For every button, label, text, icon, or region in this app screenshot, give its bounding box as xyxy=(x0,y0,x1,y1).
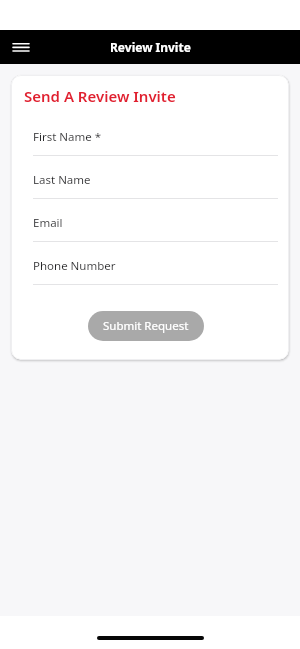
staticText: Email xyxy=(33,215,63,231)
button[interactable]: First Name * xyxy=(33,129,278,156)
staticText: Phone Number xyxy=(33,258,116,274)
staticText: Review Invite xyxy=(110,39,191,55)
staticText: Last Name xyxy=(33,172,91,188)
button[interactable]: Submit Request xyxy=(88,311,204,341)
button[interactable]: Phone Number xyxy=(33,258,278,285)
staticText: Submit Request xyxy=(103,318,189,334)
staticText: Send A Review Invite xyxy=(24,86,176,106)
button[interactable] xyxy=(9,35,33,59)
staticText: First Name * xyxy=(33,129,102,145)
button[interactable]: Last Name xyxy=(33,172,278,199)
button[interactable]: Email xyxy=(33,215,278,242)
